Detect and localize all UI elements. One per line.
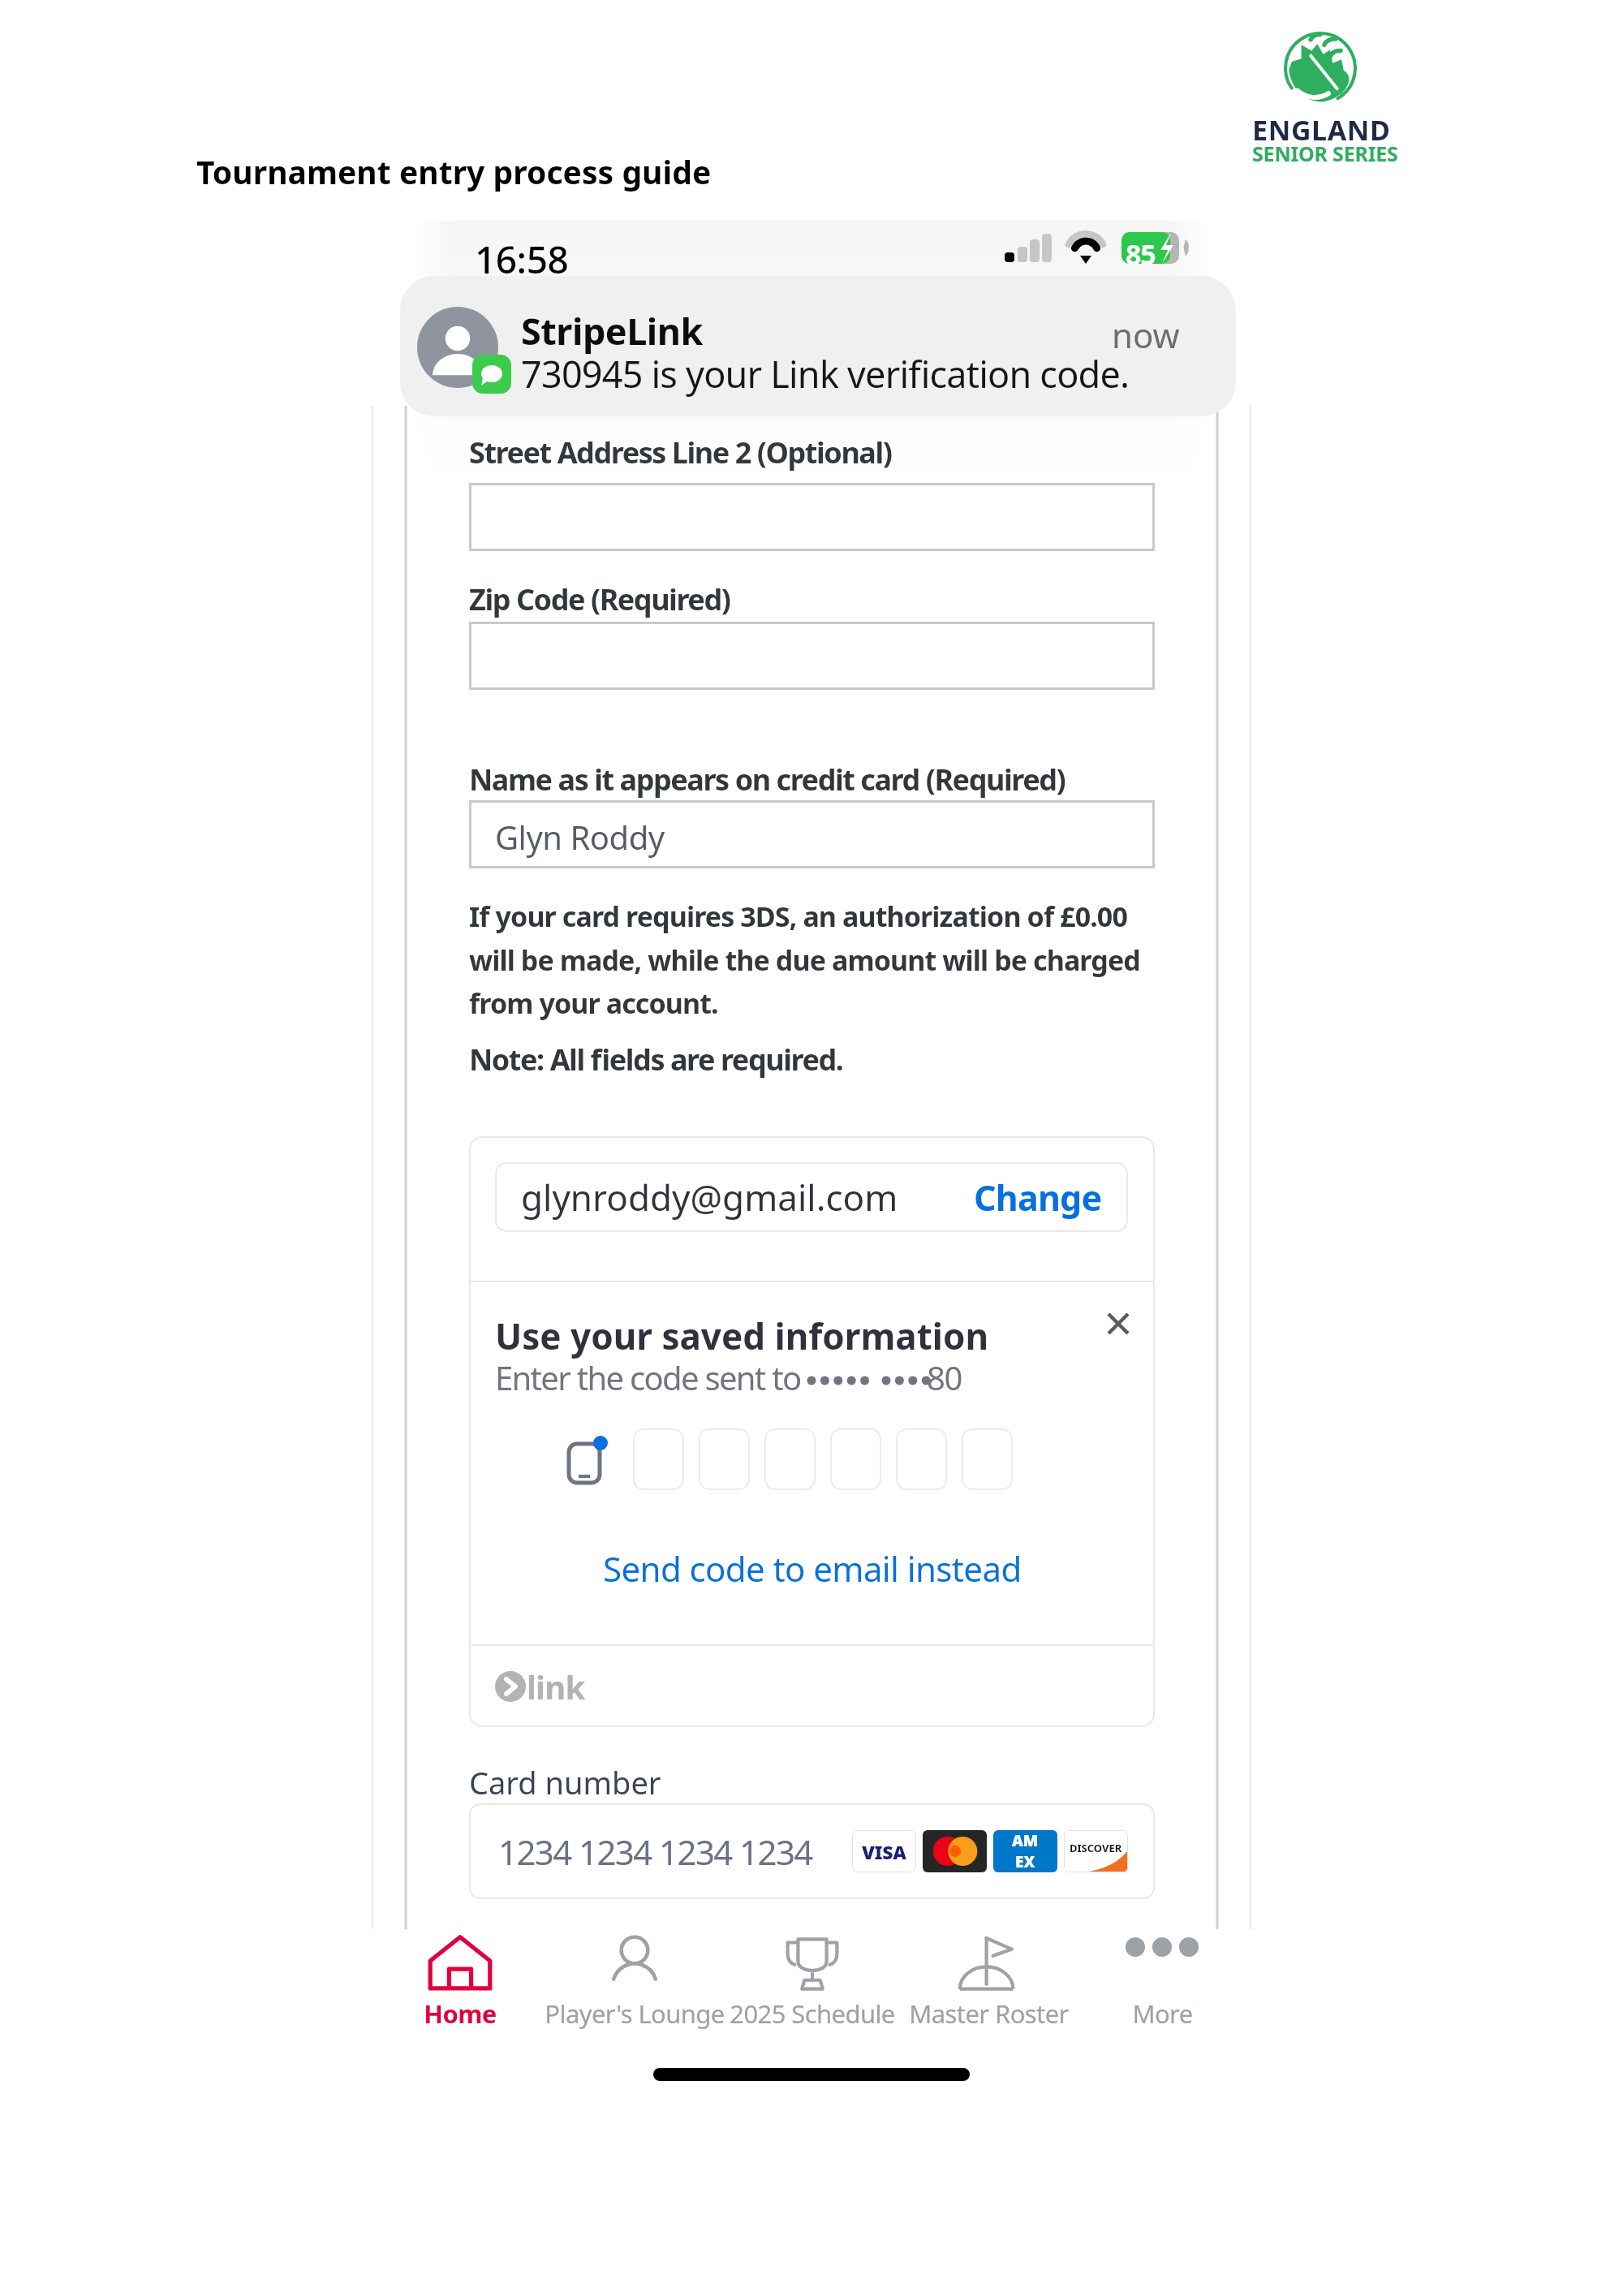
button[interactable]: 1234 1234 1234 1234 xyxy=(469,1803,1155,1899)
staticText: Home xyxy=(424,1997,497,2031)
staticText: Enter the code sent to xyxy=(495,1355,801,1399)
staticText: EX xyxy=(1015,1851,1035,1872)
button[interactable]: Master Roster xyxy=(859,1935,1118,2032)
staticText: link xyxy=(527,1665,585,1708)
staticText: Note: All fields are required. xyxy=(469,1040,843,1079)
staticText: Tournament entry process guide xyxy=(196,150,712,193)
staticText: Use your saved information xyxy=(495,1312,989,1360)
button[interactable] xyxy=(469,483,1155,551)
button[interactable]: Link xyxy=(495,1665,585,1708)
staticText: glynroddy@gmail.com xyxy=(521,1173,898,1221)
staticText: 1234 1234 1234 1234 xyxy=(498,1829,812,1875)
button[interactable]: Send code to email instead xyxy=(603,1545,1022,1592)
button[interactable] xyxy=(633,1428,684,1490)
staticText: Name as it appears on credit card (Requi… xyxy=(469,760,1065,799)
button[interactable]: StripeLink xyxy=(400,276,1236,416)
staticText: SENIOR SERIES xyxy=(1252,140,1398,167)
staticText: AM xyxy=(1012,1830,1039,1851)
staticText: Player's Lounge xyxy=(545,1997,725,2031)
button[interactable] xyxy=(896,1428,947,1490)
button[interactable]: 2025 Schedule xyxy=(682,1935,942,2032)
button[interactable]: Glyn Roddy xyxy=(469,800,1155,868)
staticText: 2025 Schedule xyxy=(730,1997,895,2031)
staticText: now xyxy=(1112,312,1180,358)
staticText: 85 xyxy=(1126,235,1156,273)
button[interactable] xyxy=(699,1428,750,1490)
staticText: Street Address Line 2 (Optional) xyxy=(469,433,892,472)
staticText: DISCOVER xyxy=(1070,1841,1122,1855)
button[interactable] xyxy=(962,1428,1013,1490)
staticText: 16:58 xyxy=(475,234,569,285)
button[interactable] xyxy=(469,622,1155,690)
staticText: ENGLAND xyxy=(1252,111,1391,149)
staticText: Change xyxy=(974,1174,1102,1221)
staticText: 80 xyxy=(927,1355,962,1399)
staticText: Master Roster xyxy=(909,1997,1069,2031)
button[interactable] xyxy=(830,1428,881,1490)
button[interactable]: glynroddy@gmail.com xyxy=(495,1162,1128,1232)
button[interactable]: Home xyxy=(330,1935,590,2032)
staticText: Card number xyxy=(469,1761,661,1803)
staticText: If your card requires 3DS, an authorizat… xyxy=(469,898,1140,1022)
staticText: StripeLink xyxy=(521,306,703,355)
staticText: 730945 is your Link verification code. xyxy=(521,349,1130,398)
button[interactable] xyxy=(764,1428,816,1490)
button[interactable]: Player's Lounge xyxy=(505,1935,764,2032)
staticText: Glyn Roddy xyxy=(495,815,665,859)
button[interactable]: Close xyxy=(1098,1303,1139,1344)
button[interactable]: More xyxy=(1032,1935,1292,2032)
staticText: Zip Code (Required) xyxy=(469,579,730,619)
staticText: More xyxy=(1132,1997,1193,2031)
staticText: VISA xyxy=(862,1839,906,1864)
